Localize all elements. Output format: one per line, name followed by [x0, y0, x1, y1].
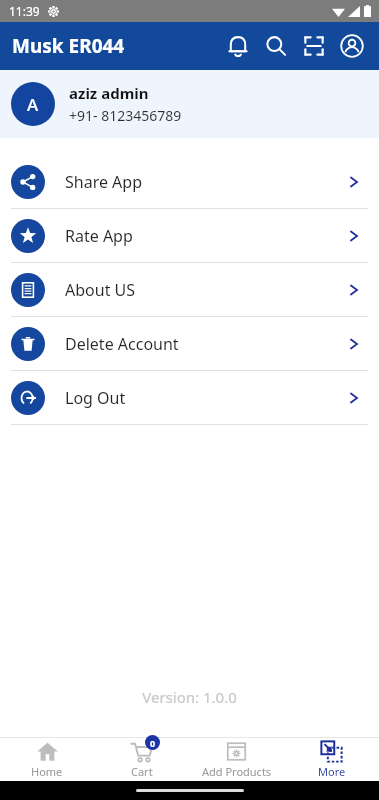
button[interactable]: Rate App: [0, 209, 379, 263]
staticText: Cart: [131, 764, 153, 779]
button[interactable]: Add Products: [189, 738, 284, 781]
staticText: About US: [65, 279, 136, 301]
button[interactable]: Log Out: [0, 371, 379, 425]
staticText: Delete Account: [65, 333, 179, 355]
button[interactable]: Account: [333, 27, 371, 65]
button[interactable]: Search: [257, 27, 295, 65]
staticText: Home: [31, 764, 63, 779]
staticText: More: [318, 764, 346, 779]
button[interactable]: Notifications: [219, 27, 257, 65]
staticText: Log Out: [65, 387, 126, 409]
button[interactable]: A: [0, 70, 379, 138]
staticText: Rate App: [65, 225, 133, 247]
button[interactable]: Share App: [0, 155, 379, 209]
button[interactable]: About US: [0, 263, 379, 317]
button[interactable]: 0: [94, 738, 189, 781]
staticText: 0: [150, 737, 156, 749]
button[interactable]: Delete Account: [0, 317, 379, 371]
button[interactable]: More: [284, 738, 379, 781]
staticText: Version: 1.0.0: [0, 687, 379, 707]
button[interactable]: Home: [0, 738, 94, 781]
staticText: Musk ER044: [12, 33, 125, 59]
staticText: A: [27, 93, 39, 116]
staticText: Share App: [65, 171, 143, 193]
staticText: +91- 8123456789: [69, 106, 182, 125]
staticText: Add Products: [202, 764, 272, 779]
staticText: aziz admin: [69, 83, 149, 103]
staticText: 11:39: [9, 3, 40, 19]
button[interactable]: Scan barcode: [295, 27, 333, 65]
